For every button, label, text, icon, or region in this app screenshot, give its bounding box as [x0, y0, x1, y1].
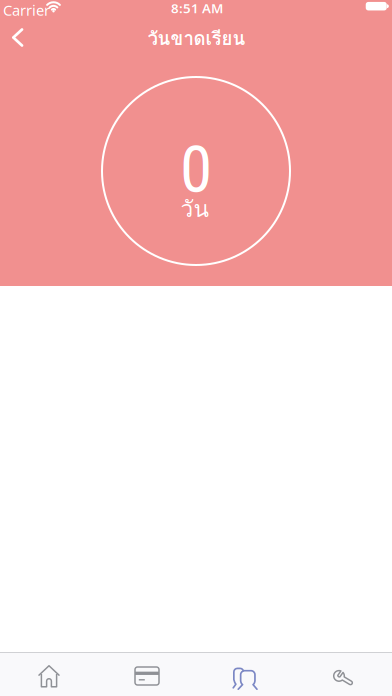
staticText: Carrier: [3, 0, 50, 20]
staticText: วัน: [180, 191, 208, 226]
button[interactable]: Home: [0, 653, 98, 696]
staticText: 0: [180, 131, 212, 208]
button[interactable]: Back: [0, 16, 35, 59]
button[interactable]: Tools: [294, 653, 392, 696]
staticText: 8:51 AM: [171, 0, 223, 17]
button[interactable]: Cards: [98, 653, 196, 696]
staticText: วันขาดเรียน: [147, 24, 245, 53]
button[interactable]: People: [196, 653, 294, 696]
